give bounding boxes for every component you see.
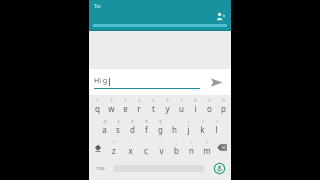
staticText: Hi g bbox=[94, 76, 108, 86]
button[interactable]: 1 bbox=[90, 97, 104, 115]
staticText: n bbox=[189, 145, 194, 156]
staticText: " bbox=[130, 140, 132, 145]
button[interactable]: ( bbox=[195, 117, 209, 136]
staticText: ( bbox=[202, 119, 204, 124]
staticText: 9 bbox=[208, 98, 211, 103]
button[interactable]: ? bbox=[199, 138, 214, 157]
button[interactable]: Add recipient from contacts bbox=[214, 10, 226, 22]
staticText: e bbox=[123, 103, 128, 114]
staticText: & bbox=[159, 119, 162, 124]
staticText: : bbox=[161, 140, 162, 145]
button[interactable]: " bbox=[122, 138, 138, 157]
button[interactable]: 9 bbox=[202, 97, 216, 115]
staticText: o bbox=[207, 103, 212, 114]
button[interactable]: 5 bbox=[146, 97, 160, 115]
staticText: z bbox=[112, 145, 116, 156]
button[interactable]: 8 bbox=[188, 97, 202, 115]
button[interactable]: # bbox=[111, 117, 125, 136]
staticText: # bbox=[117, 119, 120, 124]
staticText: 6 bbox=[166, 98, 169, 103]
button[interactable]: 6 bbox=[160, 97, 174, 115]
staticText: k bbox=[200, 124, 205, 135]
button[interactable]: & bbox=[153, 117, 167, 136]
button[interactable]: Backspace bbox=[214, 138, 230, 157]
button[interactable]: : bbox=[154, 138, 169, 157]
staticText: @ bbox=[103, 119, 107, 124]
button[interactable]: Send bbox=[206, 72, 226, 92]
staticText: $ bbox=[131, 119, 134, 124]
staticText: ) bbox=[216, 119, 218, 124]
button[interactable]: @ bbox=[97, 117, 111, 136]
button[interactable]: 3 bbox=[118, 97, 132, 115]
staticText: ; bbox=[176, 140, 177, 145]
staticText: 3 bbox=[124, 98, 127, 103]
staticText: l bbox=[215, 124, 218, 135]
staticText: u bbox=[179, 103, 184, 114]
button[interactable]: 0 bbox=[216, 97, 230, 115]
staticText: ?123 bbox=[96, 166, 105, 171]
button[interactable]: * bbox=[106, 138, 122, 157]
button[interactable]: $ bbox=[125, 117, 139, 136]
staticText: m bbox=[203, 145, 211, 156]
staticText: a bbox=[102, 124, 107, 135]
staticText: 2 bbox=[110, 98, 113, 103]
staticText: h bbox=[172, 124, 177, 135]
button[interactable]: ?123 bbox=[90, 159, 110, 178]
staticText: + bbox=[187, 119, 190, 124]
staticText: d bbox=[130, 124, 135, 135]
staticText: 0 bbox=[222, 98, 225, 103]
staticText: g bbox=[158, 124, 163, 135]
staticText: 4 bbox=[138, 98, 141, 103]
staticText: ! bbox=[191, 140, 192, 145]
staticText: - bbox=[174, 119, 176, 124]
button[interactable]: 7 bbox=[174, 97, 188, 115]
staticText: q bbox=[95, 103, 100, 114]
button[interactable]: 4 bbox=[132, 97, 146, 115]
staticText: p bbox=[221, 103, 226, 114]
button[interactable]: + bbox=[181, 117, 195, 136]
staticText: w bbox=[108, 103, 115, 114]
button[interactable]: 2 bbox=[104, 97, 118, 115]
staticText: j bbox=[187, 124, 190, 135]
staticText: t bbox=[152, 103, 155, 114]
button[interactable]: % bbox=[139, 117, 153, 136]
staticText: % bbox=[145, 119, 148, 124]
staticText: x bbox=[128, 145, 133, 156]
staticText: 8 bbox=[194, 98, 197, 103]
button[interactable]: ; bbox=[169, 138, 184, 157]
button[interactable]: Shift bbox=[90, 138, 106, 157]
staticText: r bbox=[137, 103, 141, 114]
staticText: s bbox=[116, 124, 120, 135]
staticText: c bbox=[144, 145, 148, 156]
staticText: ' bbox=[146, 140, 147, 145]
button[interactable]: ' bbox=[138, 138, 154, 157]
staticText: f bbox=[145, 124, 148, 135]
staticText: i bbox=[194, 103, 197, 114]
staticText: * bbox=[113, 140, 115, 145]
button[interactable]: ) bbox=[209, 117, 223, 136]
button[interactable]: Voice input bbox=[208, 159, 230, 178]
button[interactable]: Hi g bbox=[94, 76, 200, 89]
staticText: v bbox=[159, 145, 164, 156]
staticText: 7 bbox=[180, 98, 183, 103]
staticText: b bbox=[174, 145, 179, 156]
staticText: ? bbox=[206, 140, 208, 145]
button[interactable]: - bbox=[167, 117, 181, 136]
staticText: 5 bbox=[152, 98, 155, 103]
staticText: y bbox=[165, 103, 170, 114]
staticText: 1 bbox=[96, 98, 99, 103]
staticText: To: bbox=[94, 3, 101, 10]
button[interactable]: ! bbox=[184, 138, 199, 157]
